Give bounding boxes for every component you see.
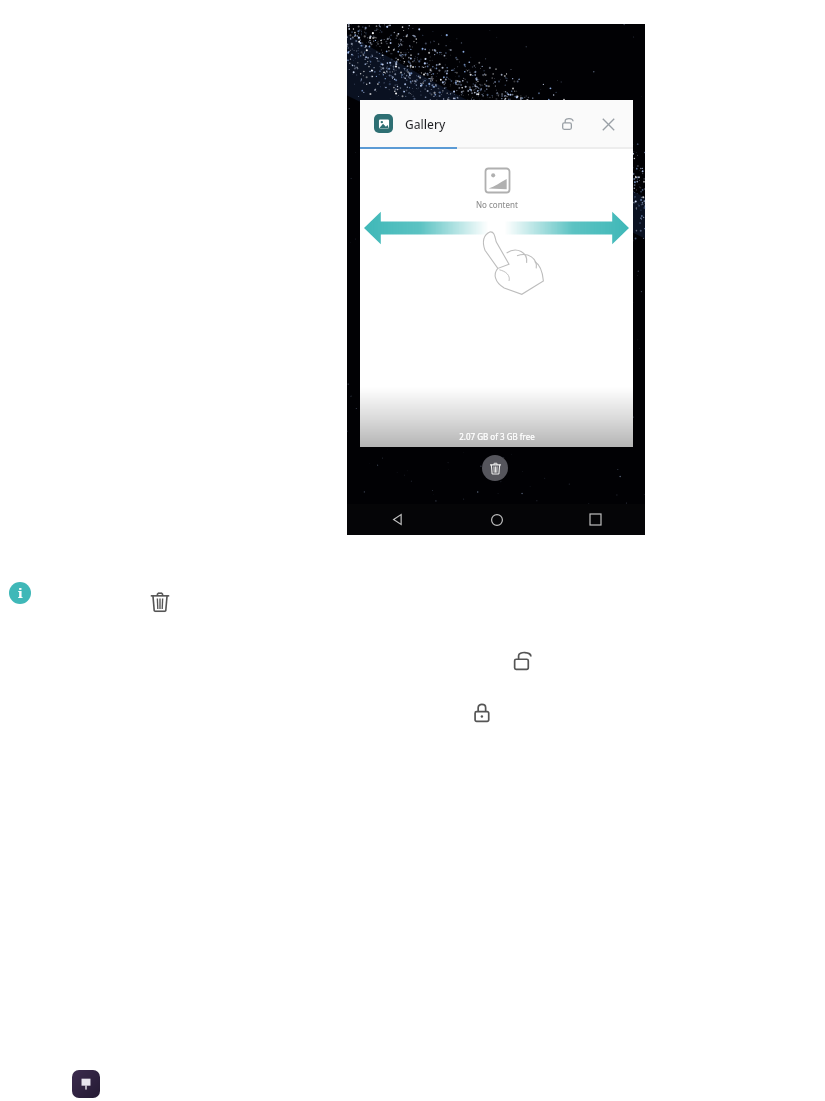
button[interactable]: Home [447,504,546,535]
staticText: Gallery [405,116,446,132]
button[interactable]: Back [347,504,447,535]
button[interactable]: Recent apps [546,504,645,535]
staticText: i [18,584,23,602]
button[interactable]: Unlock [551,107,585,141]
staticText: 2.07 GB of 3 GB free [459,431,535,442]
staticText: No content [476,199,518,210]
button[interactable]: Close [591,107,625,141]
button[interactable]: Delete [482,455,508,481]
